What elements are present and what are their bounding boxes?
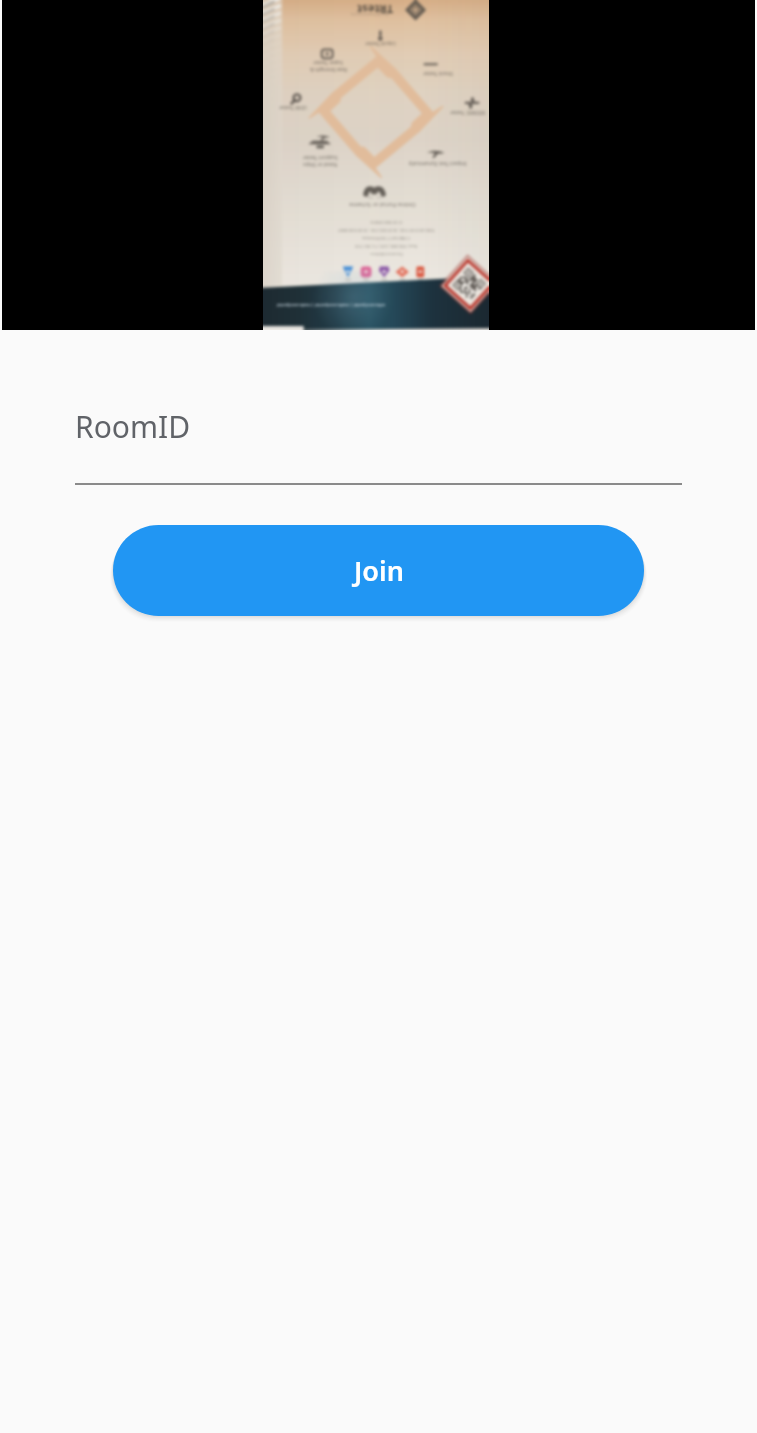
staticText: RoomID [75,406,191,447]
button[interactable]: QR code camera preview [0,0,757,330]
button[interactable]: Join [113,525,644,616]
staticText: Join [354,552,404,589]
button[interactable]: RoomID [75,406,682,485]
